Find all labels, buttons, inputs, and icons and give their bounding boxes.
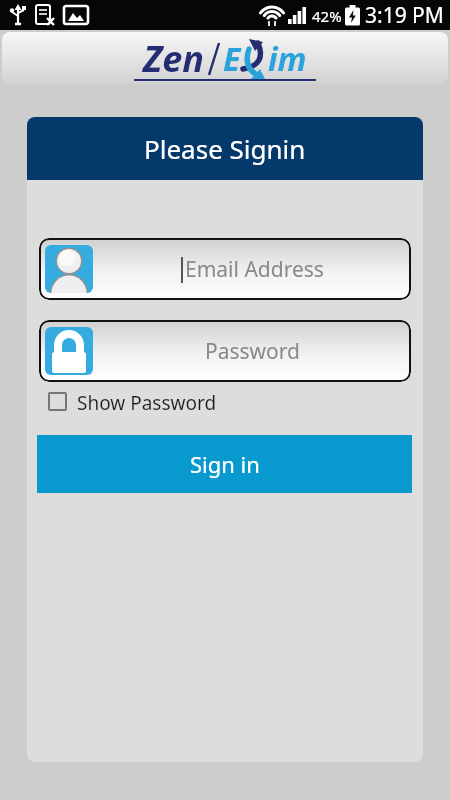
staticText: 3:19 PM <box>365 1 444 30</box>
staticText: Password <box>205 337 300 366</box>
staticText: Sign in <box>190 449 260 479</box>
staticText: im <box>268 37 307 81</box>
staticText: E <box>223 37 241 81</box>
staticText: Please Signin <box>144 131 306 166</box>
staticText: Email Address <box>185 255 324 284</box>
staticText: Zen <box>143 34 205 83</box>
button[interactable]: Sign in <box>37 435 412 493</box>
button[interactable]: Show Password <box>48 390 217 412</box>
button[interactable]: Password <box>39 320 411 382</box>
button[interactable]: Email Address <box>39 238 411 300</box>
staticText: 42% <box>312 6 342 26</box>
staticText: Show Password <box>77 390 217 412</box>
